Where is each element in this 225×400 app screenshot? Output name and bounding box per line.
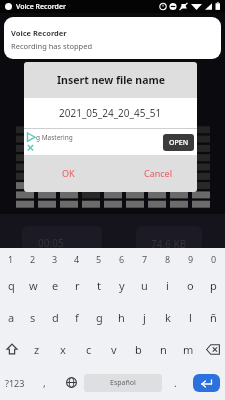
button[interactable]: Change language: [58, 365, 84, 400]
button[interactable]: 2: [22, 248, 44, 270]
staticText: 4: [74, 253, 80, 265]
button[interactable]: ñ: [202, 301, 225, 333]
button[interactable]: ,: [30, 365, 58, 400]
staticText: d: [52, 310, 59, 325]
staticText: w: [29, 278, 38, 293]
button[interactable]: OPEN: [163, 134, 194, 151]
staticText: j: [143, 310, 146, 325]
button[interactable]: ?123: [0, 365, 30, 400]
button[interactable]: c: [76, 333, 101, 365]
button[interactable]: t: [88, 270, 110, 301]
button[interactable]: 9: [179, 248, 202, 270]
staticText: r: [75, 278, 80, 293]
button[interactable]: q: [0, 270, 22, 301]
staticText: Español: [110, 378, 136, 388]
staticText: 00:05: [38, 236, 64, 250]
staticText: 0: [211, 253, 217, 265]
staticText: o: [187, 278, 194, 293]
button[interactable]: o: [179, 270, 202, 301]
button[interactable]: i: [156, 270, 179, 301]
staticText: q: [8, 278, 15, 293]
staticText: s: [30, 310, 36, 325]
staticText: Voice Recorder: [11, 28, 67, 38]
staticText: z: [34, 342, 40, 357]
button[interactable]: j: [133, 301, 156, 333]
button[interactable]: Shift: [0, 333, 24, 365]
button[interactable]: 1: [0, 248, 22, 270]
button[interactable]: Español: [84, 374, 162, 392]
staticText: 5: [96, 253, 102, 265]
staticText: ?123: [5, 377, 25, 389]
button[interactable]: n: [151, 333, 176, 365]
button[interactable]: a: [0, 301, 22, 333]
staticText: x: [60, 342, 66, 357]
button[interactable]: k: [156, 301, 179, 333]
button[interactable]: p: [202, 270, 225, 301]
button[interactable]: Voice Recorder: [4, 17, 221, 59]
button[interactable]: .: [162, 365, 188, 400]
staticText: i: [166, 278, 169, 293]
button[interactable]: Cancel: [144, 167, 173, 179]
button[interactable]: y: [110, 270, 133, 301]
button[interactable]: 3: [44, 248, 66, 270]
button[interactable]: Enter: [193, 374, 220, 392]
staticText: l: [189, 310, 192, 325]
staticText: 74.6 KB: [151, 237, 187, 251]
staticText: Voice Recorder: [16, 2, 66, 12]
button[interactable]: w: [22, 270, 44, 301]
staticText: f: [75, 310, 79, 325]
staticText: t: [97, 278, 101, 293]
staticText: Cancel: [144, 167, 173, 179]
staticText: 9: [188, 253, 194, 265]
button[interactable]: v: [101, 333, 126, 365]
staticText: 8: [165, 253, 171, 265]
staticText: n: [160, 342, 167, 357]
staticText: v: [111, 342, 117, 357]
staticText: Recording has stopped: [11, 41, 93, 51]
button[interactable]: 4: [66, 248, 88, 270]
button[interactable]: OK: [62, 167, 75, 179]
button[interactable]: h: [110, 301, 133, 333]
staticText: u: [141, 278, 148, 293]
button[interactable]: g: [88, 301, 110, 333]
staticText: b: [135, 342, 142, 357]
staticText: c: [86, 342, 92, 357]
button[interactable]: z: [24, 333, 50, 365]
button[interactable]: b: [126, 333, 151, 365]
staticText: ,: [43, 376, 46, 390]
staticText: h: [118, 310, 125, 325]
staticText: a: [8, 310, 15, 325]
staticText: 7: [142, 253, 148, 265]
button[interactable]: d: [44, 301, 66, 333]
staticText: OK: [62, 167, 75, 179]
button[interactable]: l: [179, 301, 202, 333]
staticText: g Mastering: [36, 133, 73, 142]
staticText: 2: [30, 253, 36, 265]
button[interactable]: x: [50, 333, 76, 365]
staticText: 2021_05_24_20_45_51: [59, 106, 162, 120]
staticText: ñ: [210, 310, 217, 325]
staticText: Insert new file name: [57, 73, 165, 87]
staticText: m: [183, 342, 194, 357]
button[interactable]: e: [44, 270, 66, 301]
button[interactable]: 8: [156, 248, 179, 270]
button[interactable]: f: [66, 301, 88, 333]
button[interactable]: Backspace: [201, 333, 225, 365]
button[interactable]: 6: [110, 248, 133, 270]
staticText: y: [119, 278, 125, 293]
button[interactable]: 0: [202, 248, 225, 270]
staticText: p: [210, 278, 217, 293]
button[interactable]: 5: [88, 248, 110, 270]
staticText: e: [52, 278, 59, 293]
staticText: 3: [52, 253, 58, 265]
button[interactable]: 7: [133, 248, 156, 270]
staticText: OPEN: [169, 138, 189, 148]
staticText: .: [174, 376, 177, 390]
staticText: 1: [8, 253, 14, 265]
button[interactable]: s: [22, 301, 44, 333]
button[interactable]: m: [176, 333, 201, 365]
staticText: 6: [119, 253, 125, 265]
staticText: k: [165, 310, 171, 325]
button[interactable]: u: [133, 270, 156, 301]
button[interactable]: r: [66, 270, 88, 301]
